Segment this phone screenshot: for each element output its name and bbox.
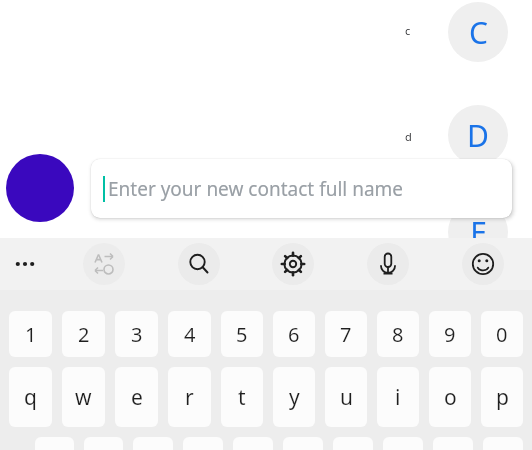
staticText: 0 xyxy=(496,321,508,348)
button[interactable]: q xyxy=(9,367,52,427)
button[interactable]: C xyxy=(448,2,508,62)
staticText: 9 xyxy=(444,321,456,348)
staticText: p xyxy=(496,383,509,412)
button[interactable]: 4 xyxy=(168,311,211,357)
button[interactable]: Contact photo xyxy=(6,154,74,222)
staticText: 3 xyxy=(131,321,143,348)
staticText: C xyxy=(469,12,488,53)
staticText: w xyxy=(75,383,92,412)
button[interactable]: w xyxy=(62,367,105,427)
staticText: D xyxy=(467,115,489,156)
button[interactable]: i xyxy=(377,367,419,427)
button[interactable]: e xyxy=(115,367,158,427)
button[interactable]: 1 xyxy=(9,311,52,357)
button[interactable]: t xyxy=(221,367,263,427)
staticText: Enter your new contact full name xyxy=(108,176,404,202)
staticText: q xyxy=(24,383,37,412)
staticText: o xyxy=(444,383,457,412)
staticText: 4 xyxy=(184,321,196,348)
button[interactable]: 9 xyxy=(429,311,471,357)
button[interactable]: Voice input xyxy=(367,243,409,285)
button[interactable]: Emoji xyxy=(462,243,504,285)
button[interactable]: Translate xyxy=(83,243,125,285)
staticText: 7 xyxy=(340,321,352,348)
button[interactable]: Enter your new contact full name xyxy=(91,159,512,218)
button[interactable]: 0 xyxy=(481,311,523,357)
button[interactable]: Search xyxy=(178,243,220,285)
button[interactable]: 8 xyxy=(377,311,419,357)
button[interactable]: r xyxy=(168,367,211,427)
button[interactable]: o xyxy=(429,367,471,427)
staticText: u xyxy=(340,383,353,412)
staticText: y xyxy=(289,383,300,412)
staticText: i xyxy=(395,383,401,412)
staticText: 1 xyxy=(25,321,37,348)
button[interactable]: 6 xyxy=(273,311,315,357)
button[interactable]: 3 xyxy=(115,311,158,357)
button[interactable]: D xyxy=(448,105,508,165)
staticText: d xyxy=(405,129,412,144)
staticText: e xyxy=(131,383,143,412)
button[interactable]: E xyxy=(448,202,508,262)
button[interactable]: y xyxy=(273,367,315,427)
button[interactable]: p xyxy=(481,367,523,427)
staticText: c xyxy=(405,23,411,38)
button[interactable]: 5 xyxy=(221,311,263,357)
staticText: 6 xyxy=(288,321,300,348)
button[interactable]: 7 xyxy=(325,311,367,357)
button[interactable]: More options xyxy=(4,243,46,285)
staticText: E xyxy=(470,212,487,253)
staticText: 2 xyxy=(78,321,90,348)
button[interactable]: u xyxy=(325,367,367,427)
button[interactable]: 2 xyxy=(62,311,105,357)
staticText: t xyxy=(238,383,246,412)
button[interactable]: Settings xyxy=(272,243,314,285)
staticText: 8 xyxy=(392,321,404,348)
staticText: r xyxy=(185,383,194,412)
staticText: 5 xyxy=(236,321,248,348)
